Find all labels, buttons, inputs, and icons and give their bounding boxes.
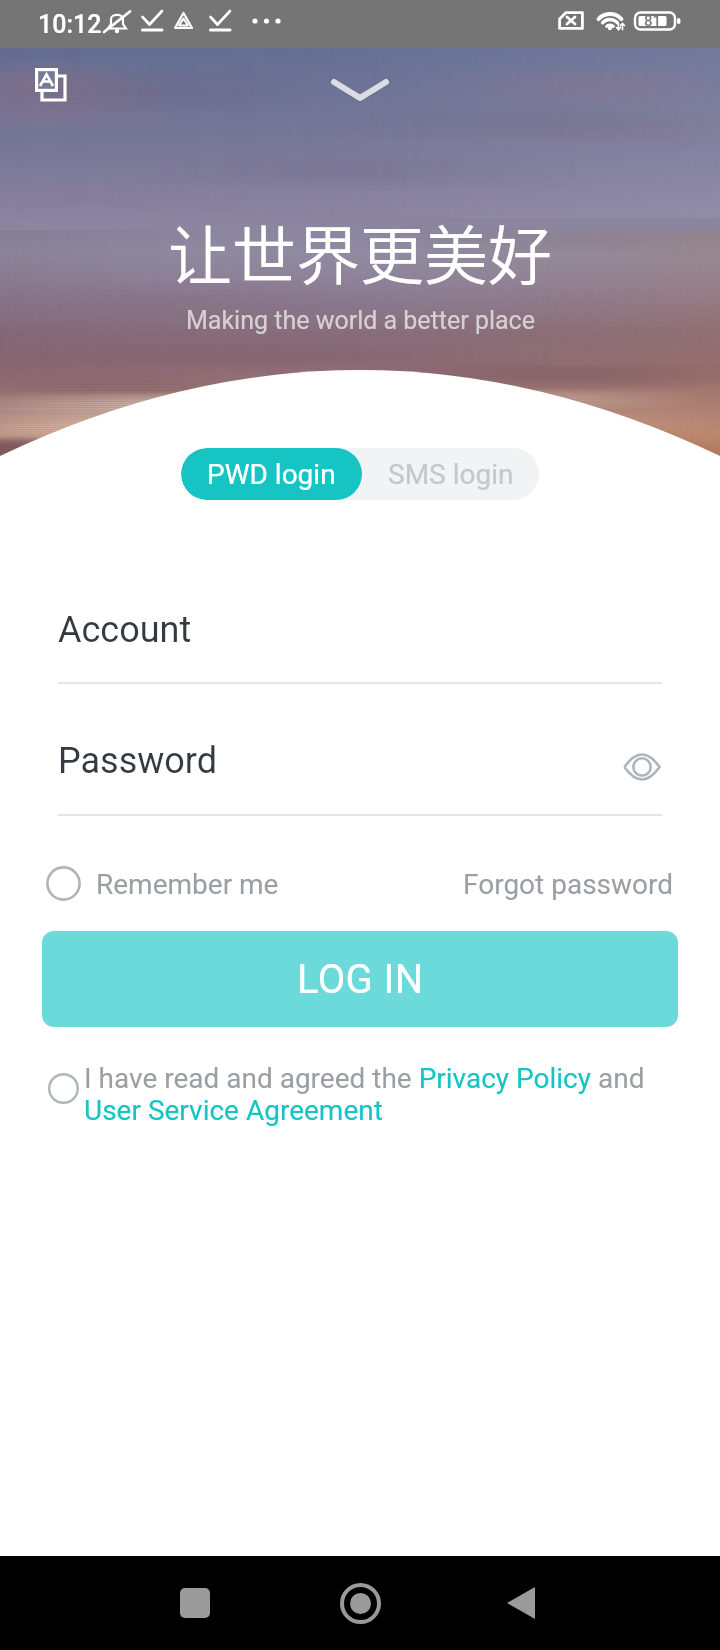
- button[interactable]: Password: [58, 718, 662, 815]
- button[interactable]: Account: [58, 590, 662, 682]
- staticText: SMS login: [388, 458, 514, 491]
- staticText: PWD login: [207, 458, 336, 491]
- button[interactable]: SMS login: [362, 448, 539, 500]
- button[interactable]: Back: [481, 1556, 561, 1650]
- button[interactable]: Forgot password: [463, 868, 674, 901]
- button[interactable]: PWD login: [181, 448, 362, 500]
- staticText: LOG IN: [297, 956, 424, 1003]
- button[interactable]: Show password: [618, 743, 666, 791]
- button[interactable]: Home: [320, 1556, 400, 1650]
- staticText: Making the world a better place: [186, 306, 535, 335]
- staticText: I have read and agreed the Privacy Polic…: [84, 1062, 670, 1127]
- button[interactable]: Agree to terms: [43, 1068, 83, 1108]
- staticText: 81: [644, 12, 662, 30]
- button[interactable]: Recent apps: [155, 1556, 235, 1650]
- button[interactable]: Change language: [22, 56, 78, 112]
- staticText: 让世界更美好: [168, 205, 552, 298]
- staticText: 10:12: [38, 10, 102, 39]
- staticText: Forgot password: [463, 868, 674, 901]
- staticText: Remember me: [96, 868, 279, 901]
- button[interactable]: Remember me: [46, 866, 279, 901]
- staticText: Password: [58, 740, 218, 782]
- button[interactable]: LOG IN: [42, 931, 678, 1027]
- button[interactable]: Collapse: [320, 62, 400, 118]
- button[interactable]: I have read and agreed the Privacy Polic…: [84, 1062, 670, 1127]
- staticText: Account: [58, 609, 192, 651]
